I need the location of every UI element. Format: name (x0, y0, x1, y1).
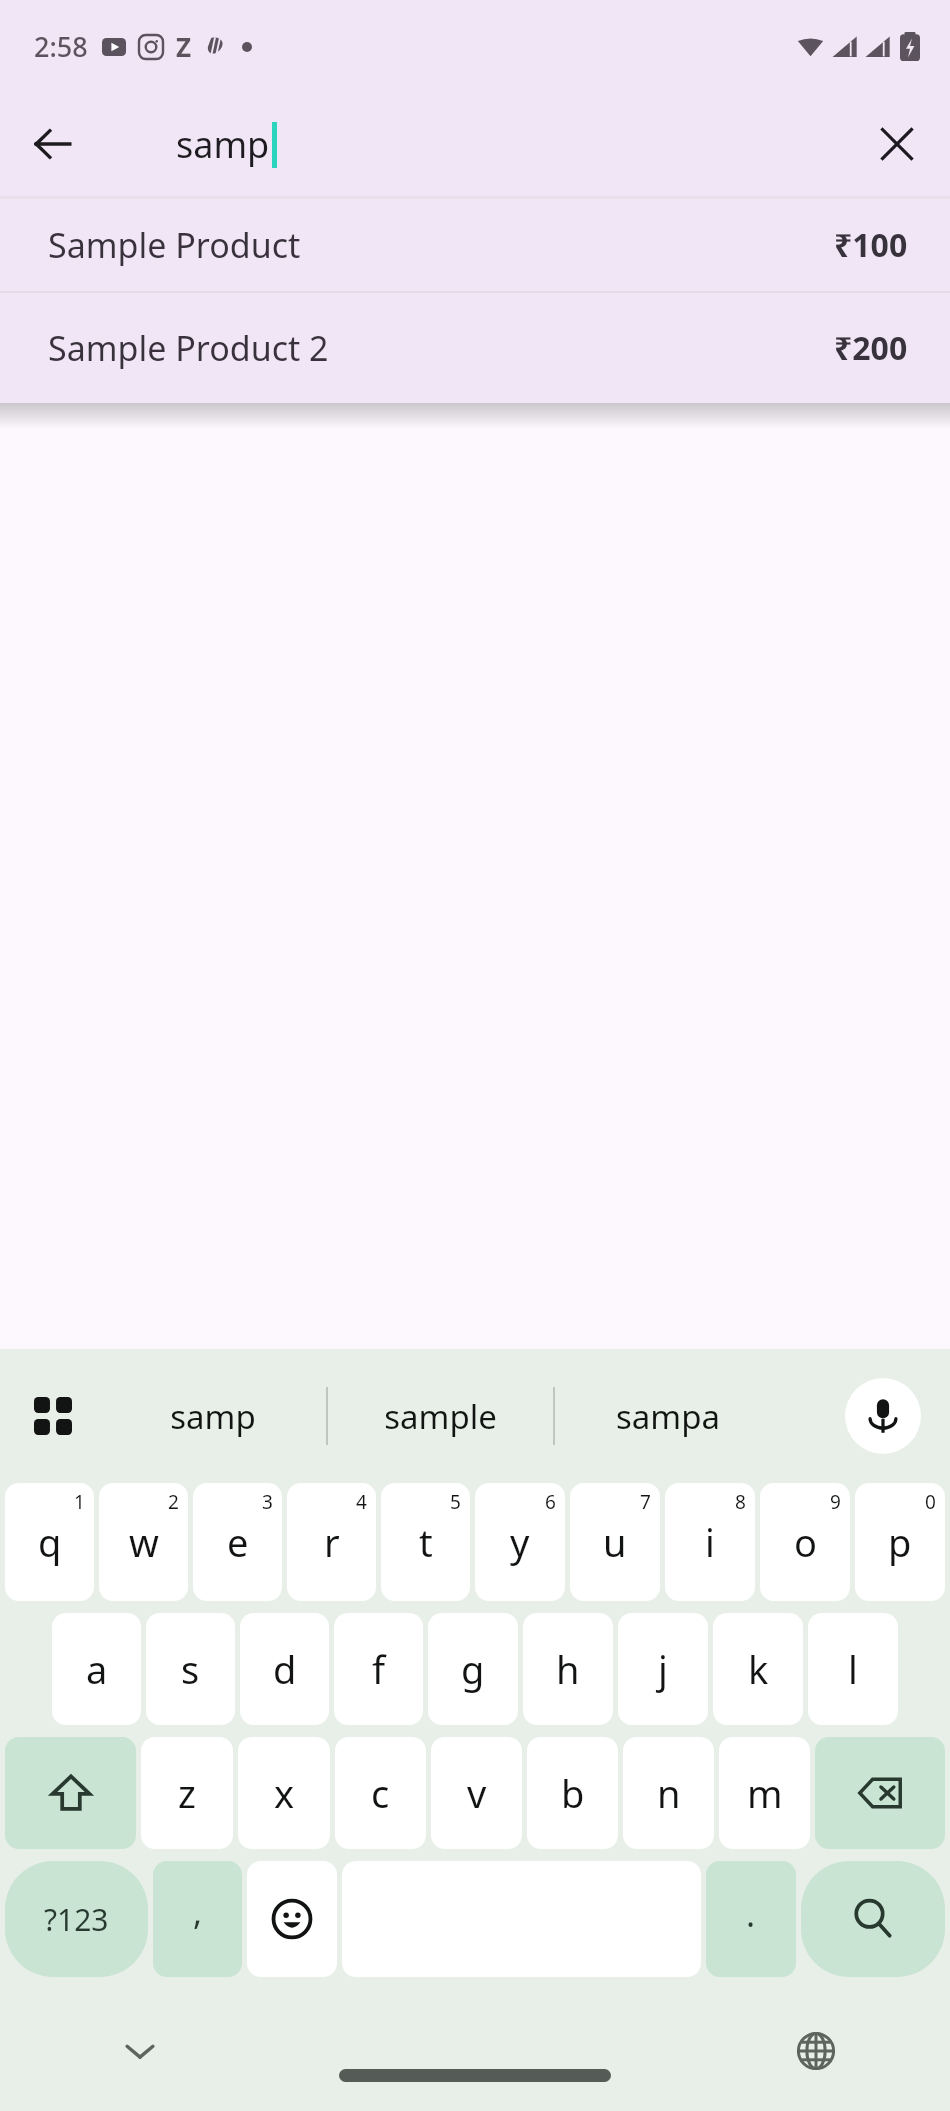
staticText: x (274, 1767, 295, 1819)
button[interactable]: Sample Product 2 (0, 293, 950, 403)
button[interactable]: r (287, 1483, 376, 1601)
button[interactable]: Back (18, 109, 88, 179)
staticText: Sample Product 2 (48, 325, 329, 371)
staticText: Sample Product (48, 222, 301, 268)
button[interactable]: Shift (5, 1737, 136, 1849)
staticText: u (603, 1516, 627, 1568)
staticText: s (181, 1643, 200, 1695)
staticText: z (178, 1767, 196, 1819)
button[interactable]: Hide keyboard (112, 2023, 168, 2079)
staticText: l (848, 1643, 858, 1695)
button[interactable]: o (760, 1483, 850, 1601)
staticText: sampa (616, 1394, 720, 1439)
staticText: sample (384, 1394, 497, 1439)
staticText: j (658, 1643, 668, 1695)
staticText: f (372, 1643, 386, 1695)
button[interactable]: e (193, 1483, 282, 1601)
button[interactable]: a (52, 1613, 141, 1725)
button[interactable]: k (713, 1613, 803, 1725)
button[interactable]: g (428, 1613, 518, 1725)
staticText: w (129, 1516, 159, 1568)
button[interactable]: Search (801, 1861, 945, 1977)
button[interactable]: ?123 (5, 1861, 148, 1977)
staticText: , (193, 1889, 203, 1935)
staticText: 7 (640, 1489, 651, 1515)
staticText: g (461, 1643, 485, 1695)
button[interactable]: j (618, 1613, 708, 1725)
staticText: c (371, 1767, 390, 1819)
button[interactable]: c (335, 1737, 426, 1849)
button[interactable]: Clear search (862, 109, 932, 179)
staticText: ₹200 (834, 326, 908, 370)
button[interactable]: . (706, 1861, 796, 1977)
staticText: q (38, 1516, 62, 1568)
staticText: d (273, 1643, 297, 1695)
button[interactable]: Backspace (815, 1737, 945, 1849)
staticText: samp (170, 1394, 256, 1439)
staticText: r (324, 1516, 340, 1568)
button[interactable]: h (523, 1613, 613, 1725)
button[interactable]: Sample Product (0, 199, 950, 291)
button[interactable]: Emoji (247, 1861, 337, 1977)
staticText: samp (176, 120, 270, 169)
button[interactable]: y (475, 1483, 565, 1601)
staticText: 6 (545, 1489, 556, 1515)
staticText: 9 (830, 1489, 841, 1515)
staticText: n (657, 1767, 681, 1819)
staticText: 3 (262, 1489, 273, 1515)
staticText: 8 (735, 1489, 746, 1515)
button[interactable]: u (570, 1483, 660, 1601)
button[interactable]: Toolbar (24, 1387, 82, 1445)
staticText: Z (176, 29, 192, 64)
button[interactable]: p (855, 1483, 945, 1601)
staticText: 5 (450, 1489, 461, 1515)
button[interactable]: m (719, 1737, 810, 1849)
button[interactable]: t (381, 1483, 470, 1601)
button[interactable]: Change language (788, 2023, 844, 2079)
staticText: m (747, 1767, 783, 1819)
button[interactable]: f (334, 1613, 423, 1725)
button[interactable]: b (527, 1737, 618, 1849)
button[interactable]: w (99, 1483, 188, 1601)
button[interactable]: i (665, 1483, 755, 1601)
staticText: y (510, 1516, 530, 1568)
staticText: ₹100 (834, 223, 908, 267)
staticText: . (746, 1891, 756, 1937)
staticText: p (888, 1516, 912, 1568)
staticText: 4 (356, 1489, 367, 1515)
button[interactable]: sample (328, 1349, 553, 1483)
button[interactable]: samp (100, 1349, 326, 1483)
button[interactable]: l (808, 1613, 898, 1725)
staticText: ?123 (44, 1899, 109, 1940)
button[interactable]: , (153, 1861, 242, 1977)
staticText: h (556, 1643, 580, 1695)
staticText: t (419, 1516, 433, 1568)
button[interactable]: Voice input (845, 1378, 921, 1454)
staticText: 2:58 (34, 28, 88, 65)
button[interactable]: x (238, 1737, 330, 1849)
button[interactable]: s (146, 1613, 235, 1725)
staticText: e (227, 1516, 249, 1568)
button[interactable]: n (623, 1737, 714, 1849)
staticText: 0 (925, 1489, 936, 1515)
staticText: k (748, 1643, 769, 1695)
button[interactable]: z (141, 1737, 233, 1849)
staticText: b (561, 1767, 585, 1819)
staticText: i (705, 1516, 715, 1568)
staticText: v (467, 1767, 487, 1819)
staticText: a (86, 1643, 108, 1695)
button[interactable]: sampa (555, 1349, 780, 1483)
staticText: 2 (168, 1489, 179, 1515)
button[interactable]: v (431, 1737, 522, 1849)
staticText: o (794, 1516, 817, 1568)
button[interactable]: d (240, 1613, 329, 1725)
button[interactable]: q (5, 1483, 94, 1601)
staticText: 1 (74, 1489, 85, 1515)
